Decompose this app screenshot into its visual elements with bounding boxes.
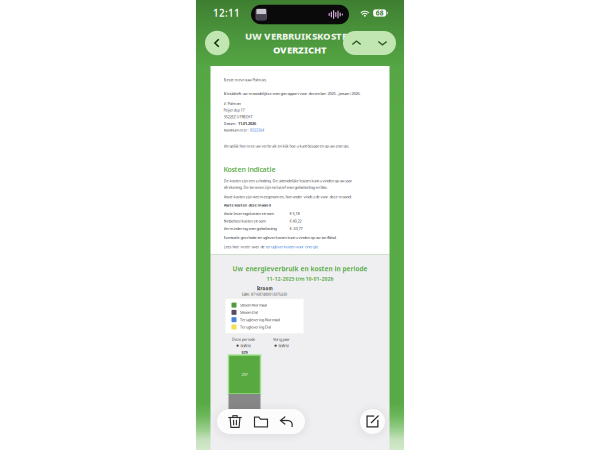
staticText: OVERZICHT bbox=[273, 43, 327, 56]
staticText: EAN: 871687480013075430 bbox=[242, 292, 287, 297]
staticText: (kWh) bbox=[278, 343, 288, 348]
staticText: Vaste kosten zijn niet meegenomen, hiero… bbox=[223, 194, 351, 199]
button[interactable]: Back bbox=[205, 31, 229, 55]
staticText: Teruglevering Normaal bbox=[240, 317, 280, 322]
button[interactable]: Delete bbox=[222, 408, 248, 434]
staticText: terugleverkosten voor energie. bbox=[266, 244, 319, 249]
staticText: (kWh) bbox=[240, 343, 250, 348]
staticText: Vorig jaar bbox=[273, 337, 290, 342]
staticText: Beste mevrouw Polman, bbox=[223, 77, 266, 82]
staticText: Stroom bbox=[256, 286, 272, 292]
button[interactable]: Compose bbox=[360, 409, 385, 434]
staticText: Datum: bbox=[223, 121, 236, 126]
staticText: € 5,18 bbox=[289, 211, 299, 216]
staticText: 579 bbox=[241, 350, 247, 355]
staticText: Uw energieverbruik en kosten in periode bbox=[232, 264, 367, 273]
staticText: Kosten indicatie bbox=[223, 165, 275, 174]
staticText: UW VERBRUIKSKOSTEN bbox=[245, 30, 355, 42]
staticText: € -53,77 bbox=[289, 226, 302, 231]
staticText: Vaste leveringskosten stroom bbox=[223, 211, 274, 216]
staticText: Peijerdsp 17 bbox=[223, 107, 244, 113]
staticText: Eventuele geschatte terugleverkosten kun… bbox=[223, 235, 336, 240]
staticText: Netbeheerkosten stroom bbox=[223, 218, 266, 224]
staticText: V. Polman bbox=[223, 101, 240, 106]
button[interactable]: Move to folder bbox=[248, 408, 274, 434]
staticText: € 40,22 bbox=[289, 218, 301, 224]
staticText: 3522EZ UTRECHT bbox=[223, 114, 252, 119]
staticText: Vermindering energiebelasting bbox=[223, 226, 276, 231]
staticText: Stroom Dal bbox=[240, 310, 258, 315]
staticText: afrekening. De tarieven zijn inclusief e… bbox=[223, 185, 327, 190]
staticText: De kosten zijn een schatting. De uiteind… bbox=[223, 178, 352, 183]
button[interactable]: Reply bbox=[274, 408, 300, 434]
staticText: Lees hier meer over de bbox=[223, 244, 264, 249]
button[interactable]: Next message bbox=[369, 31, 395, 55]
staticText: 297 bbox=[241, 372, 247, 377]
staticText: 12:11 bbox=[213, 6, 240, 20]
staticText: Alstublieft: uw maandelijkse energierapp… bbox=[223, 91, 360, 96]
staticText: Vaste kosten deze maand bbox=[223, 202, 270, 208]
staticText: Vergelijk hiermee uw verbruik en kijk ho… bbox=[223, 143, 349, 149]
staticText: 8322364 bbox=[250, 127, 264, 133]
staticText: 11-12-2025 t/m 10-01-2026 bbox=[266, 275, 333, 282]
staticText: Klantnummer: bbox=[223, 127, 248, 133]
staticText: 68 bbox=[376, 8, 384, 18]
staticText: Teruglevering Dal bbox=[240, 324, 271, 329]
staticText: Deze periode bbox=[232, 337, 255, 342]
staticText: 11-01-2026 bbox=[238, 121, 256, 126]
button[interactable]: Previous message bbox=[343, 31, 369, 55]
staticText: Stroom Normaal bbox=[240, 302, 267, 308]
